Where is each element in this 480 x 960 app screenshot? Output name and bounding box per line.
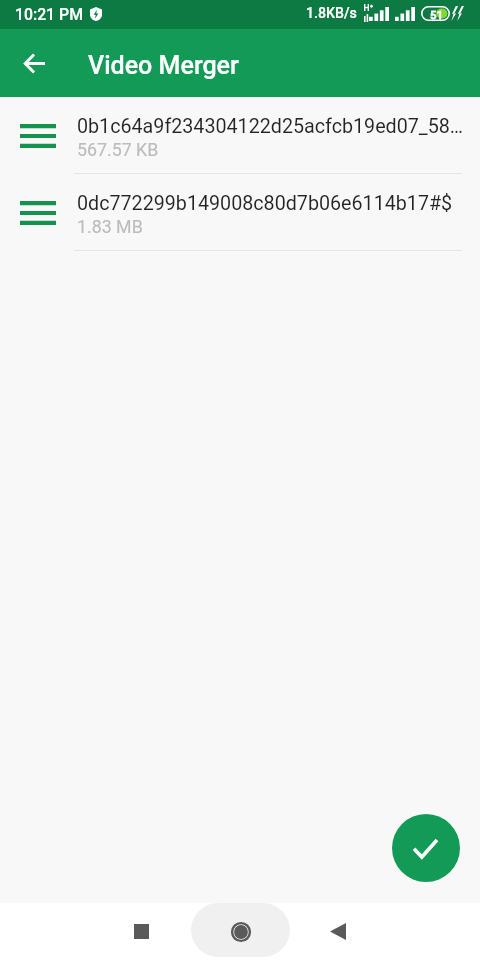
button[interactable]: Back xyxy=(10,39,58,87)
button[interactable]: Back xyxy=(314,907,362,955)
button[interactable]: Recent apps xyxy=(117,907,165,955)
button[interactable]: Home xyxy=(191,903,290,957)
staticText: 1.8KB/s xyxy=(306,5,357,22)
button[interactable]: Confirm merge xyxy=(392,814,460,882)
staticText: 10:21 PM xyxy=(15,5,83,24)
button[interactable]: 0dc772299b149008c80d7b06e6114b17#$ xyxy=(0,174,480,251)
staticText: 51 xyxy=(430,8,444,21)
staticText: 0b1c64a9f234304122d25acfcb19ed07_58… xyxy=(77,115,464,138)
staticText: 567.57 KB xyxy=(77,139,159,160)
staticText: Video Merger xyxy=(88,51,239,80)
button[interactable]: 0b1c64a9f234304122d25acfcb19ed07_58… xyxy=(0,97,480,174)
staticText: 1.83 MB xyxy=(77,216,143,237)
staticText: 0dc772299b149008c80d7b06e6114b17#$ xyxy=(77,192,453,215)
